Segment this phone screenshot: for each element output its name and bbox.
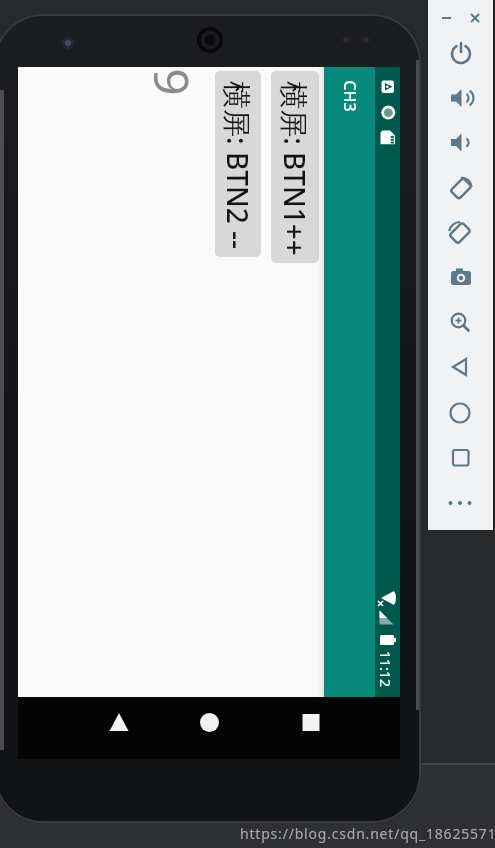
button[interactable] xyxy=(444,351,478,387)
button[interactable] xyxy=(444,486,478,522)
button[interactable] xyxy=(444,81,478,117)
button[interactable] xyxy=(465,8,485,28)
button[interactable] xyxy=(94,700,144,745)
button[interactable] xyxy=(444,396,478,432)
button[interactable] xyxy=(444,216,478,252)
staticText: https://blog.csdn.net/qq_18625571 xyxy=(240,824,495,843)
button[interactable] xyxy=(444,261,478,297)
button[interactable] xyxy=(444,306,478,342)
staticText: 横屏: BTN1++ xyxy=(276,81,314,256)
button[interactable] xyxy=(271,71,319,263)
staticText: 横屏: BTN2 -- xyxy=(219,81,257,249)
button[interactable] xyxy=(436,8,456,28)
button[interactable] xyxy=(444,36,478,72)
staticText: 11:12 xyxy=(376,651,395,687)
button[interactable] xyxy=(444,126,478,162)
button[interactable] xyxy=(444,171,478,207)
button[interactable] xyxy=(286,700,336,745)
button[interactable] xyxy=(444,441,478,477)
button[interactable] xyxy=(215,71,261,257)
button[interactable] xyxy=(324,67,375,697)
staticText: 9 xyxy=(140,68,205,96)
button[interactable] xyxy=(185,700,235,745)
staticText: CH3 xyxy=(339,80,361,112)
